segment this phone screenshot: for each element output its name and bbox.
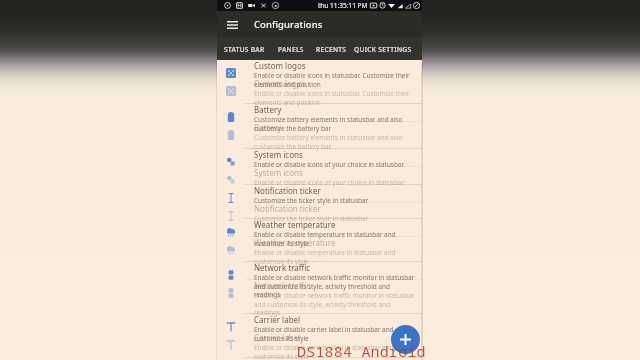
staticText: Customize the ticker style in statusbar [254, 196, 369, 205]
staticText: Enable or disable network traffic monito… [254, 273, 415, 298]
staticText: Enable or disable temperature in statusb… [254, 248, 415, 265]
staticText: Weather temperature [254, 219, 336, 230]
button[interactable]: Weather temperature [217, 237, 422, 280]
staticText: Enable or disable network traffic monito… [254, 291, 415, 316]
staticText: Weather temperature [254, 237, 336, 248]
button[interactable]: Battery [217, 122, 422, 167]
button[interactable]: Weather temperature [217, 219, 422, 262]
staticText: System icons [254, 149, 303, 160]
staticText: Enable or disable carrier label in statu… [254, 343, 415, 360]
button[interactable]: PANELS [271, 37, 310, 61]
staticText: STATUS BAR [224, 45, 265, 54]
staticText: System icons [254, 167, 303, 178]
staticText: Carrier label [254, 314, 301, 325]
staticText: Notification ticker [254, 203, 321, 214]
staticText: QUICK SETTINGS [354, 45, 412, 54]
staticText: Enable or disable carrier label in statu… [254, 325, 415, 342]
staticText: Network traffic [254, 280, 311, 291]
staticText: Enable or disable temperature in statusb… [254, 230, 415, 247]
button[interactable]: QUICK SETTINGS [352, 37, 414, 61]
button[interactable]: Battery [217, 104, 422, 149]
button[interactable]: RECENTS [310, 37, 352, 61]
staticText: PANELS [278, 45, 304, 54]
staticText: thu 11:35:11 PM [318, 1, 368, 10]
button[interactable]: Custom logos [217, 78, 422, 122]
staticText: Enable or disable icons in statusbar. Cu… [254, 89, 415, 106]
button[interactable]: Add configuration [391, 325, 420, 354]
button[interactable]: STATUS BAR [217, 37, 271, 61]
button[interactable]: System icons [217, 167, 422, 203]
button[interactable]: Carrier label [217, 314, 422, 358]
staticText: Custom logos [254, 78, 306, 89]
button[interactable]: Network traffic [217, 262, 422, 314]
staticText: Network traffic [254, 262, 311, 273]
staticText: Customize battery elements in statusbar … [254, 133, 415, 150]
staticText: Enable or disable icons in statusbar. Cu… [254, 71, 415, 88]
staticText: Battery [254, 122, 282, 133]
button[interactable]: Notification ticker [217, 185, 422, 219]
staticText: Customize the ticker style in statusbar [254, 214, 369, 223]
staticText: Configurations [254, 18, 323, 31]
button[interactable]: Custom logos [217, 60, 422, 104]
staticText: Notification ticker [254, 185, 321, 196]
button[interactable]: System icons [217, 149, 422, 185]
button[interactable]: Carrier label [217, 332, 422, 360]
staticText: Customize battery elements in statusbar … [254, 115, 415, 132]
staticText: DS1884 Android [297, 341, 426, 360]
staticText: Enable or disable icons of your choice i… [254, 178, 405, 187]
staticText: RECENTS [316, 45, 347, 54]
staticText: Battery [254, 104, 282, 115]
button[interactable]: Network traffic [217, 280, 422, 332]
staticText: Custom logos [254, 60, 306, 71]
staticText: Enable or disable icons of your choice i… [254, 160, 405, 169]
staticText: Carrier label [254, 332, 301, 343]
button[interactable]: Open navigation menu [221, 14, 243, 36]
button[interactable]: Notification ticker [217, 203, 422, 237]
